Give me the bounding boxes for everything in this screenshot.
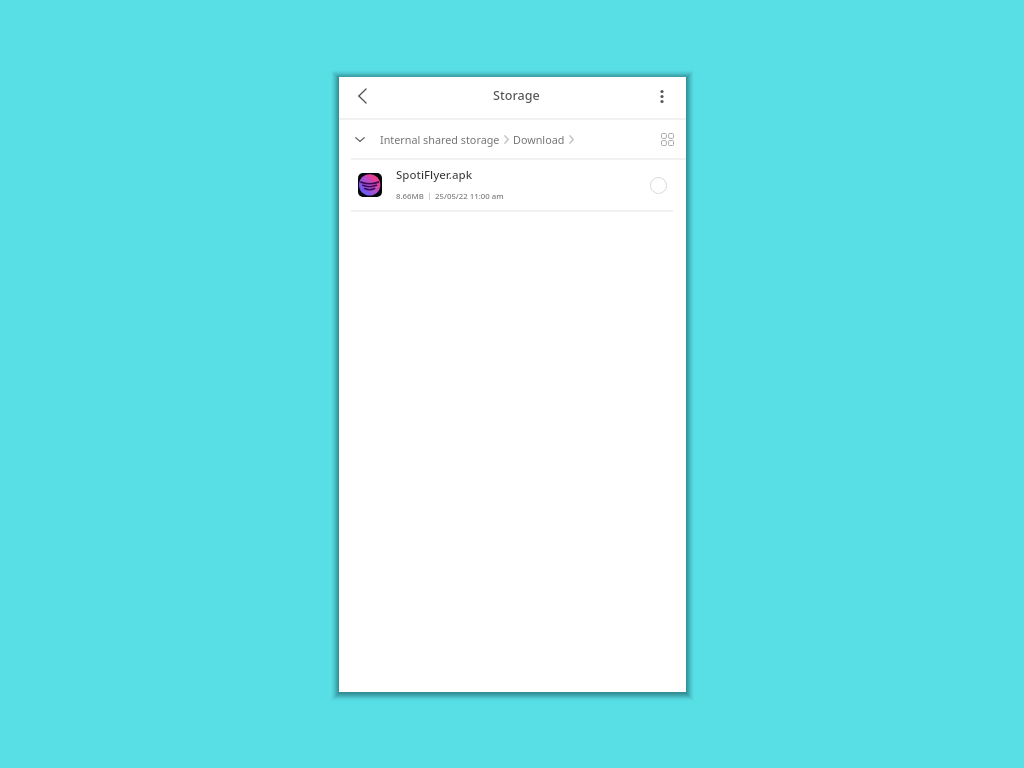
button[interactable]: Collapse path (350, 130, 369, 149)
staticText: 8.66MB (396, 191, 424, 202)
button[interactable]: Back (347, 81, 377, 111)
staticText: 25/05/22 11:00 am (435, 191, 504, 202)
button[interactable]: Download (513, 132, 565, 147)
button[interactable]: SpotiFlyer.apk (339, 160, 686, 210)
button[interactable]: Grid view (656, 128, 678, 150)
button[interactable]: Internal shared storage (380, 132, 500, 147)
staticText: SpotiFlyer.apk (396, 167, 473, 183)
staticText: Storage (493, 87, 540, 104)
button[interactable]: Select file (645, 172, 671, 198)
button[interactable]: More options (648, 82, 676, 110)
